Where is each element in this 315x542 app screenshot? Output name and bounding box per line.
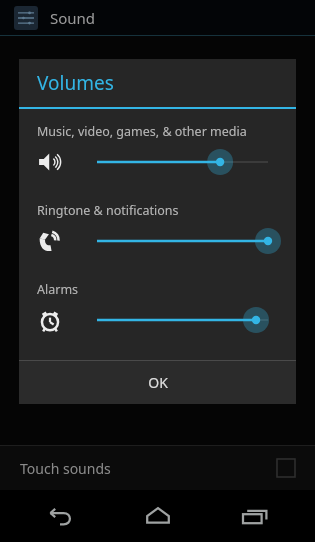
staticText: Touch sounds	[20, 459, 111, 478]
button[interactable]: Home	[120, 490, 196, 542]
other: Alarm volume	[37, 307, 63, 333]
other: Touch sounds checkbox	[277, 459, 295, 477]
button[interactable]: Recent apps	[217, 490, 293, 542]
other: Media volume	[37, 149, 63, 175]
staticText: Alarms	[37, 281, 79, 298]
staticText: OK	[148, 373, 168, 392]
other: Settings icon	[14, 6, 38, 30]
button[interactable]: Ringtone volume slider	[83, 225, 282, 257]
button[interactable]: OK	[19, 361, 296, 404]
button[interactable]: Music, video, games, & other media	[19, 109, 296, 188]
other: Ringtone volume	[37, 228, 63, 254]
button[interactable]: Alarm volume slider	[83, 304, 282, 336]
button[interactable]: Ringtone & notifications	[19, 188, 296, 267]
staticText: Sound	[50, 8, 96, 28]
button[interactable]: Back	[22, 490, 98, 542]
staticText: Volumes	[37, 70, 114, 96]
button[interactable]: Settings icon	[0, 0, 315, 36]
staticText: Music, video, games, & other media	[37, 123, 247, 140]
staticText: Ringtone & notifications	[37, 202, 179, 219]
button[interactable]: Alarms	[19, 267, 296, 346]
button[interactable]: Media volume slider	[83, 146, 282, 178]
button[interactable]: Touch sounds	[0, 446, 315, 490]
